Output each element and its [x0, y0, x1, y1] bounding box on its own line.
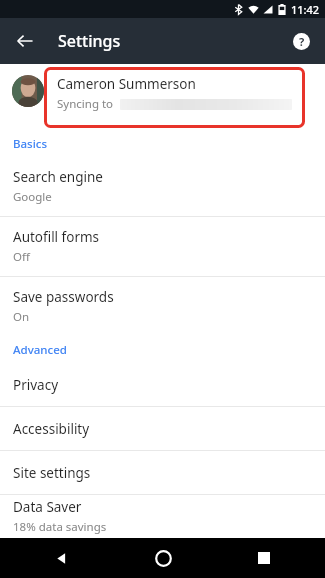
staticText: ? [299, 34, 305, 49]
staticText: Advanced [13, 342, 67, 358]
button[interactable]: Back [44, 541, 78, 575]
staticText: Cameron Summerson [57, 75, 196, 93]
button[interactable]: Back [8, 24, 42, 58]
staticText: Privacy [13, 376, 59, 394]
staticText: On [13, 309, 30, 325]
staticText: Off [13, 249, 30, 265]
button[interactable]: Privacy [0, 363, 325, 406]
staticText: Data Saver [13, 498, 82, 516]
button[interactable]: Site settings [0, 451, 325, 494]
staticText: Search engine [13, 168, 103, 186]
staticText: Autofill forms [13, 228, 100, 246]
staticText: Site settings [13, 464, 91, 482]
button[interactable]: Save passwords [0, 277, 325, 336]
staticText: Google [13, 189, 52, 205]
button[interactable]: Cameron Summerson [0, 64, 325, 130]
staticText: Accessibility [13, 420, 90, 438]
staticText: Settings [58, 30, 121, 52]
button[interactable]: Search engine [0, 157, 325, 216]
staticText: Save passwords [13, 288, 114, 306]
button[interactable]: Autofill forms [0, 217, 325, 276]
button[interactable]: Recent apps [247, 541, 281, 575]
staticText: Syncing to [57, 96, 114, 112]
staticText: 18% data savings [13, 519, 107, 535]
staticText: Basics [13, 136, 48, 152]
button[interactable]: Home [146, 541, 180, 575]
button[interactable]: Accessibility [0, 407, 325, 450]
staticText: 11:42 [291, 2, 320, 17]
button[interactable]: Data Saver [0, 495, 325, 538]
button[interactable]: Help [285, 25, 317, 57]
